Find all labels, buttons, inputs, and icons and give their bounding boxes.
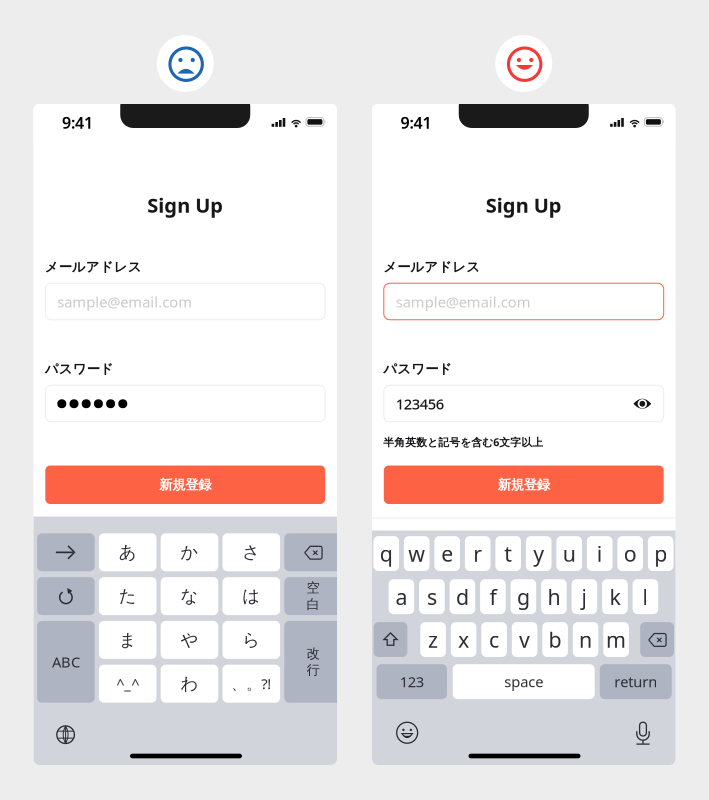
staticText: c — [489, 625, 499, 654]
button[interactable]: p — [648, 536, 673, 571]
button[interactable]: q — [373, 536, 399, 571]
staticText: ^_^ — [116, 674, 139, 693]
button[interactable]: h — [541, 579, 567, 614]
button[interactable]: t — [495, 536, 521, 571]
staticText: パスワード — [45, 361, 114, 377]
staticText: h — [547, 582, 560, 611]
button[interactable]: x — [451, 622, 476, 657]
staticText: ABC — [52, 652, 80, 672]
staticText: r — [473, 539, 482, 568]
button[interactable]: s — [419, 579, 445, 614]
staticText: た — [119, 585, 137, 607]
button[interactable]: 、。?! — [222, 665, 280, 703]
button[interactable]: g — [511, 579, 536, 614]
staticText: Sign Up — [486, 192, 562, 218]
button[interactable]: y — [526, 536, 551, 571]
staticText: 白 — [307, 596, 320, 612]
button[interactable]: ら — [222, 621, 280, 659]
button[interactable]: あ — [99, 533, 156, 571]
button[interactable]: Emoji — [396, 722, 418, 744]
staticText: k — [609, 582, 620, 611]
staticText: w — [408, 539, 425, 568]
staticText: s — [427, 582, 437, 611]
button[interactable]: f — [480, 579, 506, 614]
staticText: な — [180, 585, 198, 607]
button[interactable]: k — [602, 579, 628, 614]
button[interactable]: 123 — [376, 664, 447, 699]
button[interactable]: 空 — [284, 577, 342, 615]
staticText: ま — [119, 629, 137, 651]
staticText: v — [519, 625, 530, 654]
button[interactable]: n — [573, 622, 598, 657]
staticText: わ — [180, 673, 198, 694]
staticText: 半角英数と記号を含む6文字以上 — [383, 435, 543, 449]
staticText: 、。?! — [231, 674, 271, 693]
button[interactable]: か — [161, 533, 218, 571]
staticText: m — [606, 625, 626, 654]
staticText: さ — [242, 542, 260, 563]
button[interactable]: Show password — [633, 398, 652, 410]
button[interactable]: v — [512, 622, 537, 657]
button[interactable]: z — [420, 622, 446, 657]
button[interactable]: 新規登録 — [45, 465, 325, 504]
staticText: 改 — [307, 645, 320, 662]
staticText: あ — [119, 542, 137, 563]
staticText: g — [517, 582, 530, 611]
staticText: Sign Up — [147, 192, 223, 218]
staticText: x — [458, 625, 469, 654]
button[interactable]: return — [600, 664, 672, 699]
staticText: sample@email.com — [57, 292, 192, 311]
staticText: e — [441, 539, 453, 568]
staticText: パスワード — [383, 361, 452, 377]
staticText: space — [504, 672, 543, 691]
button[interactable]: d — [450, 579, 475, 614]
staticText: や — [180, 629, 198, 651]
button[interactable]: b — [542, 622, 568, 657]
button[interactable] — [37, 577, 95, 615]
button[interactable] — [37, 533, 95, 571]
staticText: 9:41 — [400, 112, 431, 133]
staticText: j — [581, 582, 587, 611]
staticText: d — [456, 582, 469, 611]
staticText: 9:41 — [62, 112, 93, 133]
staticText: メールアドレス — [383, 259, 480, 275]
button[interactable]: r — [465, 536, 490, 571]
staticText: メールアドレス — [45, 259, 142, 275]
staticText: 新規登録 — [498, 477, 550, 493]
button[interactable]: j — [572, 579, 597, 614]
button[interactable]: u — [556, 536, 582, 571]
button[interactable] — [374, 622, 407, 657]
button[interactable]: Dictate — [635, 721, 651, 745]
button[interactable]: m — [603, 622, 629, 657]
button[interactable]: l — [633, 579, 658, 614]
button[interactable]: e — [434, 536, 460, 571]
staticText: 空 — [307, 580, 320, 596]
staticText: p — [654, 539, 667, 568]
button[interactable]: c — [481, 622, 507, 657]
button[interactable]: な — [161, 577, 218, 615]
button[interactable]: o — [617, 536, 643, 571]
button[interactable]: 改 — [284, 621, 342, 703]
staticText: 新規登録 — [159, 477, 211, 493]
staticText: n — [579, 625, 592, 654]
button[interactable]: ^_^ — [99, 665, 156, 703]
button[interactable]: i — [587, 536, 612, 571]
button[interactable]: w — [404, 536, 429, 571]
button[interactable] — [640, 622, 674, 657]
staticText: か — [180, 542, 198, 563]
button[interactable]: ま — [99, 621, 156, 659]
button[interactable]: は — [222, 577, 280, 615]
staticText: sample@email.com — [396, 292, 531, 311]
button[interactable]: Next keyboard — [56, 725, 75, 744]
button[interactable]: ABC — [37, 621, 95, 703]
button[interactable]: a — [389, 579, 414, 614]
staticText: i — [597, 539, 603, 568]
button[interactable]: わ — [161, 665, 218, 703]
staticText: return — [614, 672, 657, 691]
button[interactable]: さ — [222, 533, 280, 571]
button[interactable]: space — [453, 664, 595, 699]
button[interactable]: 新規登録 — [384, 465, 664, 504]
button[interactable]: や — [161, 621, 218, 659]
button[interactable]: た — [99, 577, 156, 615]
button[interactable] — [284, 533, 342, 571]
